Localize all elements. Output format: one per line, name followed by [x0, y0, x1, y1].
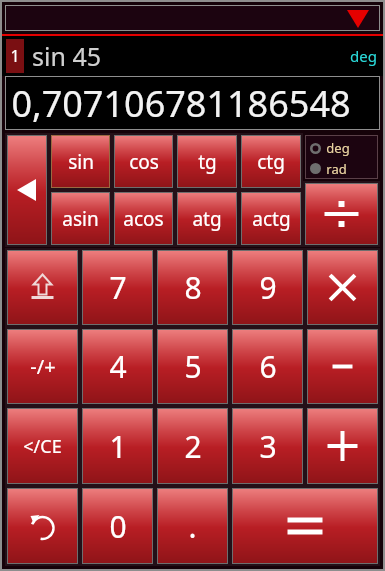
button[interactable]: 0 — [82, 488, 153, 564]
staticText: deg — [326, 139, 350, 157]
staticText: 3 — [259, 426, 277, 467]
staticText: ctg — [257, 149, 285, 175]
staticText: deg — [350, 46, 377, 66]
staticText: 0,707106781186548 — [11, 79, 351, 128]
staticText: cos — [129, 149, 159, 175]
staticText: . — [188, 506, 197, 547]
button[interactable]: Previous — [7, 135, 47, 245]
staticText: 7 — [109, 267, 127, 308]
button[interactable]: rad — [310, 158, 378, 179]
staticText: rad — [326, 160, 347, 178]
button[interactable]: 5 — [157, 329, 228, 404]
button[interactable]: tg — [177, 135, 237, 188]
button[interactable]: asin — [51, 192, 110, 245]
staticText: 1 — [109, 426, 127, 467]
button[interactable]: atg — [177, 192, 237, 245]
staticText: </CE — [23, 434, 62, 459]
staticText: 6 — [259, 346, 277, 387]
button[interactable]: 7 — [82, 250, 153, 325]
staticText: tg — [198, 149, 217, 175]
staticText: 8 — [184, 267, 202, 308]
staticText: sin 45 — [32, 39, 101, 73]
button[interactable]: Undo — [7, 488, 78, 564]
button[interactable]: cos — [114, 135, 173, 188]
button[interactable]: . — [157, 488, 228, 564]
staticText: 4 — [109, 346, 127, 387]
button[interactable]: 2 — [157, 408, 228, 484]
button[interactable]: deg — [310, 138, 378, 158]
staticText: 9 — [259, 267, 277, 308]
button[interactable]: Add — [307, 408, 378, 484]
button[interactable]: Open menu — [5, 5, 380, 31]
button[interactable]: -/+ — [7, 329, 78, 404]
staticText: asin — [62, 206, 99, 232]
staticText: -/+ — [30, 353, 56, 380]
staticText: 5 — [184, 346, 202, 387]
button[interactable]: 1 — [82, 408, 153, 484]
button[interactable]: Equals — [232, 488, 378, 564]
button[interactable]: sin — [51, 135, 110, 188]
button[interactable]: </CE — [7, 408, 78, 484]
button[interactable]: Multiply — [307, 250, 378, 325]
staticText: atg — [192, 206, 222, 232]
button[interactable]: 3 — [232, 408, 303, 484]
button[interactable]: ctg — [241, 135, 301, 188]
staticText: 0 — [109, 506, 127, 547]
button[interactable]: acos — [114, 192, 173, 245]
button[interactable]: 9 — [232, 250, 303, 325]
staticText: 2 — [184, 426, 202, 467]
button[interactable]: Subtract — [307, 329, 378, 404]
staticText: acos — [123, 206, 164, 232]
button[interactable]: Divide — [305, 183, 378, 245]
staticText: sin — [68, 149, 94, 175]
button[interactable]: Memory store — [7, 250, 78, 325]
button[interactable]: 6 — [232, 329, 303, 404]
button[interactable]: 4 — [82, 329, 153, 404]
staticText: actg — [252, 206, 291, 232]
button[interactable]: 8 — [157, 250, 228, 325]
staticText: 1 — [10, 45, 20, 67]
button[interactable]: actg — [241, 192, 301, 245]
